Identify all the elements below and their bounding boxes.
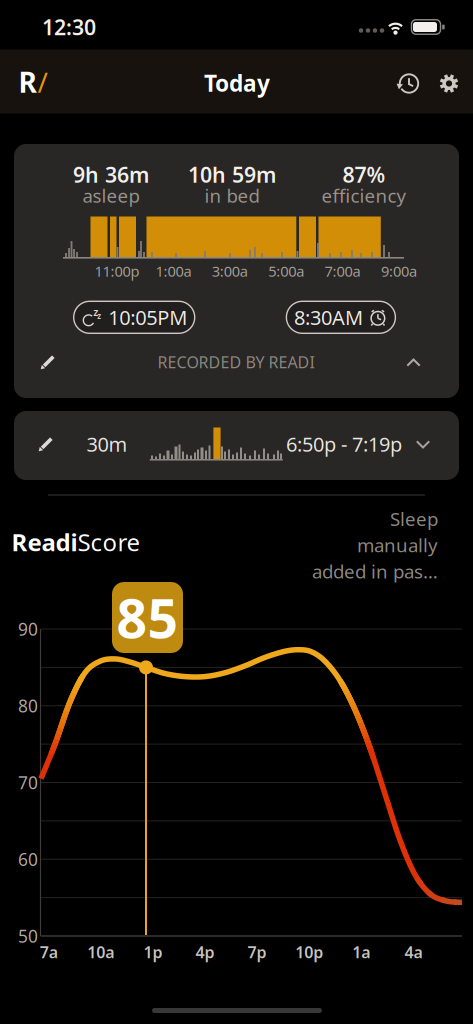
staticText: 87% bbox=[342, 160, 385, 189]
staticText: added in pas… bbox=[312, 559, 438, 584]
staticText: 60 bbox=[18, 848, 38, 871]
staticText: Today bbox=[204, 68, 270, 98]
staticText: 10h 59m bbox=[188, 160, 276, 189]
staticText: 6:50p - 7:19p bbox=[286, 431, 402, 457]
staticText: 90 bbox=[18, 617, 38, 640]
staticText: / bbox=[37, 63, 47, 101]
staticText: manually bbox=[357, 533, 438, 557]
staticText: 5:00a bbox=[268, 261, 304, 281]
staticText: 85 bbox=[116, 582, 178, 653]
staticText: z bbox=[93, 305, 98, 319]
staticText: 11:00p bbox=[94, 261, 139, 281]
staticText: 10a bbox=[87, 941, 114, 963]
staticText: asleep bbox=[82, 183, 139, 208]
staticText: 7p bbox=[248, 941, 267, 963]
staticText: RECORDED BY READI bbox=[157, 351, 314, 373]
staticText: 1p bbox=[143, 941, 162, 963]
button[interactable]: Edit sleep bbox=[38, 351, 58, 371]
button[interactable]: Edit nap bbox=[36, 433, 56, 453]
staticText: 7:00a bbox=[325, 261, 361, 281]
button[interactable]: Bedtime 10:05 PM bbox=[74, 301, 195, 333]
staticText: 12:30 bbox=[42, 13, 96, 41]
button[interactable]: Settings bbox=[438, 72, 460, 94]
button[interactable]: Alarm 8:30 AM bbox=[286, 301, 395, 333]
staticText: 4p bbox=[195, 941, 214, 963]
staticText: Sleep bbox=[390, 506, 438, 531]
staticText: 70 bbox=[18, 771, 38, 794]
staticText: Readi bbox=[11, 526, 77, 558]
staticText: efficiency bbox=[321, 183, 406, 208]
staticText: 10p bbox=[295, 941, 323, 963]
staticText: 3:00a bbox=[212, 261, 248, 281]
button[interactable]: RECORDED BY READI bbox=[66, 348, 406, 376]
button[interactable]: Readi Home bbox=[18, 63, 47, 101]
staticText: R bbox=[18, 63, 36, 101]
button[interactable]: History bbox=[396, 71, 420, 95]
staticText: 30m bbox=[86, 431, 127, 457]
staticText: 9:00a bbox=[381, 261, 417, 281]
staticText: 8:30AM bbox=[294, 304, 363, 331]
staticText: 1:00a bbox=[155, 261, 191, 281]
staticText: 50 bbox=[18, 924, 38, 947]
staticText: 1a bbox=[352, 941, 370, 963]
button[interactable]: Collapse bbox=[402, 351, 424, 373]
staticText: 7a bbox=[40, 941, 58, 963]
staticText: 4a bbox=[404, 941, 422, 963]
staticText: 80 bbox=[18, 694, 38, 717]
staticText: 9h 36m bbox=[73, 160, 149, 189]
staticText: z bbox=[97, 310, 101, 321]
staticText: Score bbox=[77, 526, 140, 558]
staticText: in bed bbox=[204, 183, 259, 208]
button[interactable]: Expand bbox=[412, 433, 434, 455]
staticText: 10:05PM bbox=[108, 304, 187, 331]
